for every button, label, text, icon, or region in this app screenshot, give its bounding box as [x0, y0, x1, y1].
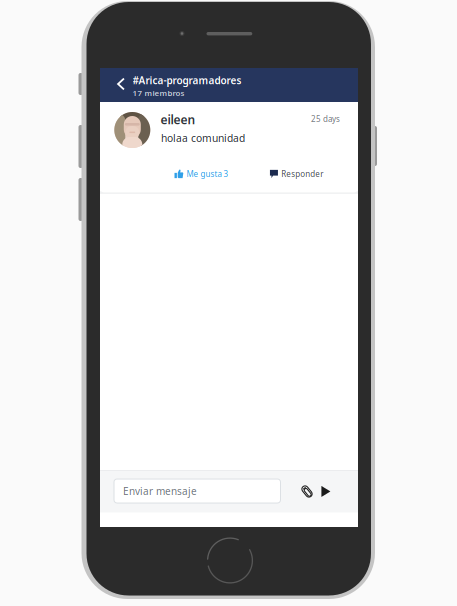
staticText: Enviar mensaje — [123, 484, 197, 498]
button[interactable]: Responder — [270, 166, 325, 182]
button[interactable]: Me gusta 3 — [175, 166, 230, 182]
button[interactable]: Enviar mensaje — [114, 479, 280, 503]
button[interactable]: Back — [111, 73, 131, 95]
staticText: 25 days — [311, 113, 340, 124]
staticText: 17 miembros — [132, 87, 184, 98]
button[interactable]: Attach file — [299, 484, 315, 498]
staticText: eileen — [160, 111, 195, 128]
staticText: Me gusta 3 — [186, 169, 228, 179]
staticText: #Arica-programadores — [132, 73, 241, 87]
staticText: Responder — [281, 169, 323, 179]
button[interactable]: Send message — [319, 485, 333, 498]
staticText: holaa comunidad — [161, 131, 245, 145]
